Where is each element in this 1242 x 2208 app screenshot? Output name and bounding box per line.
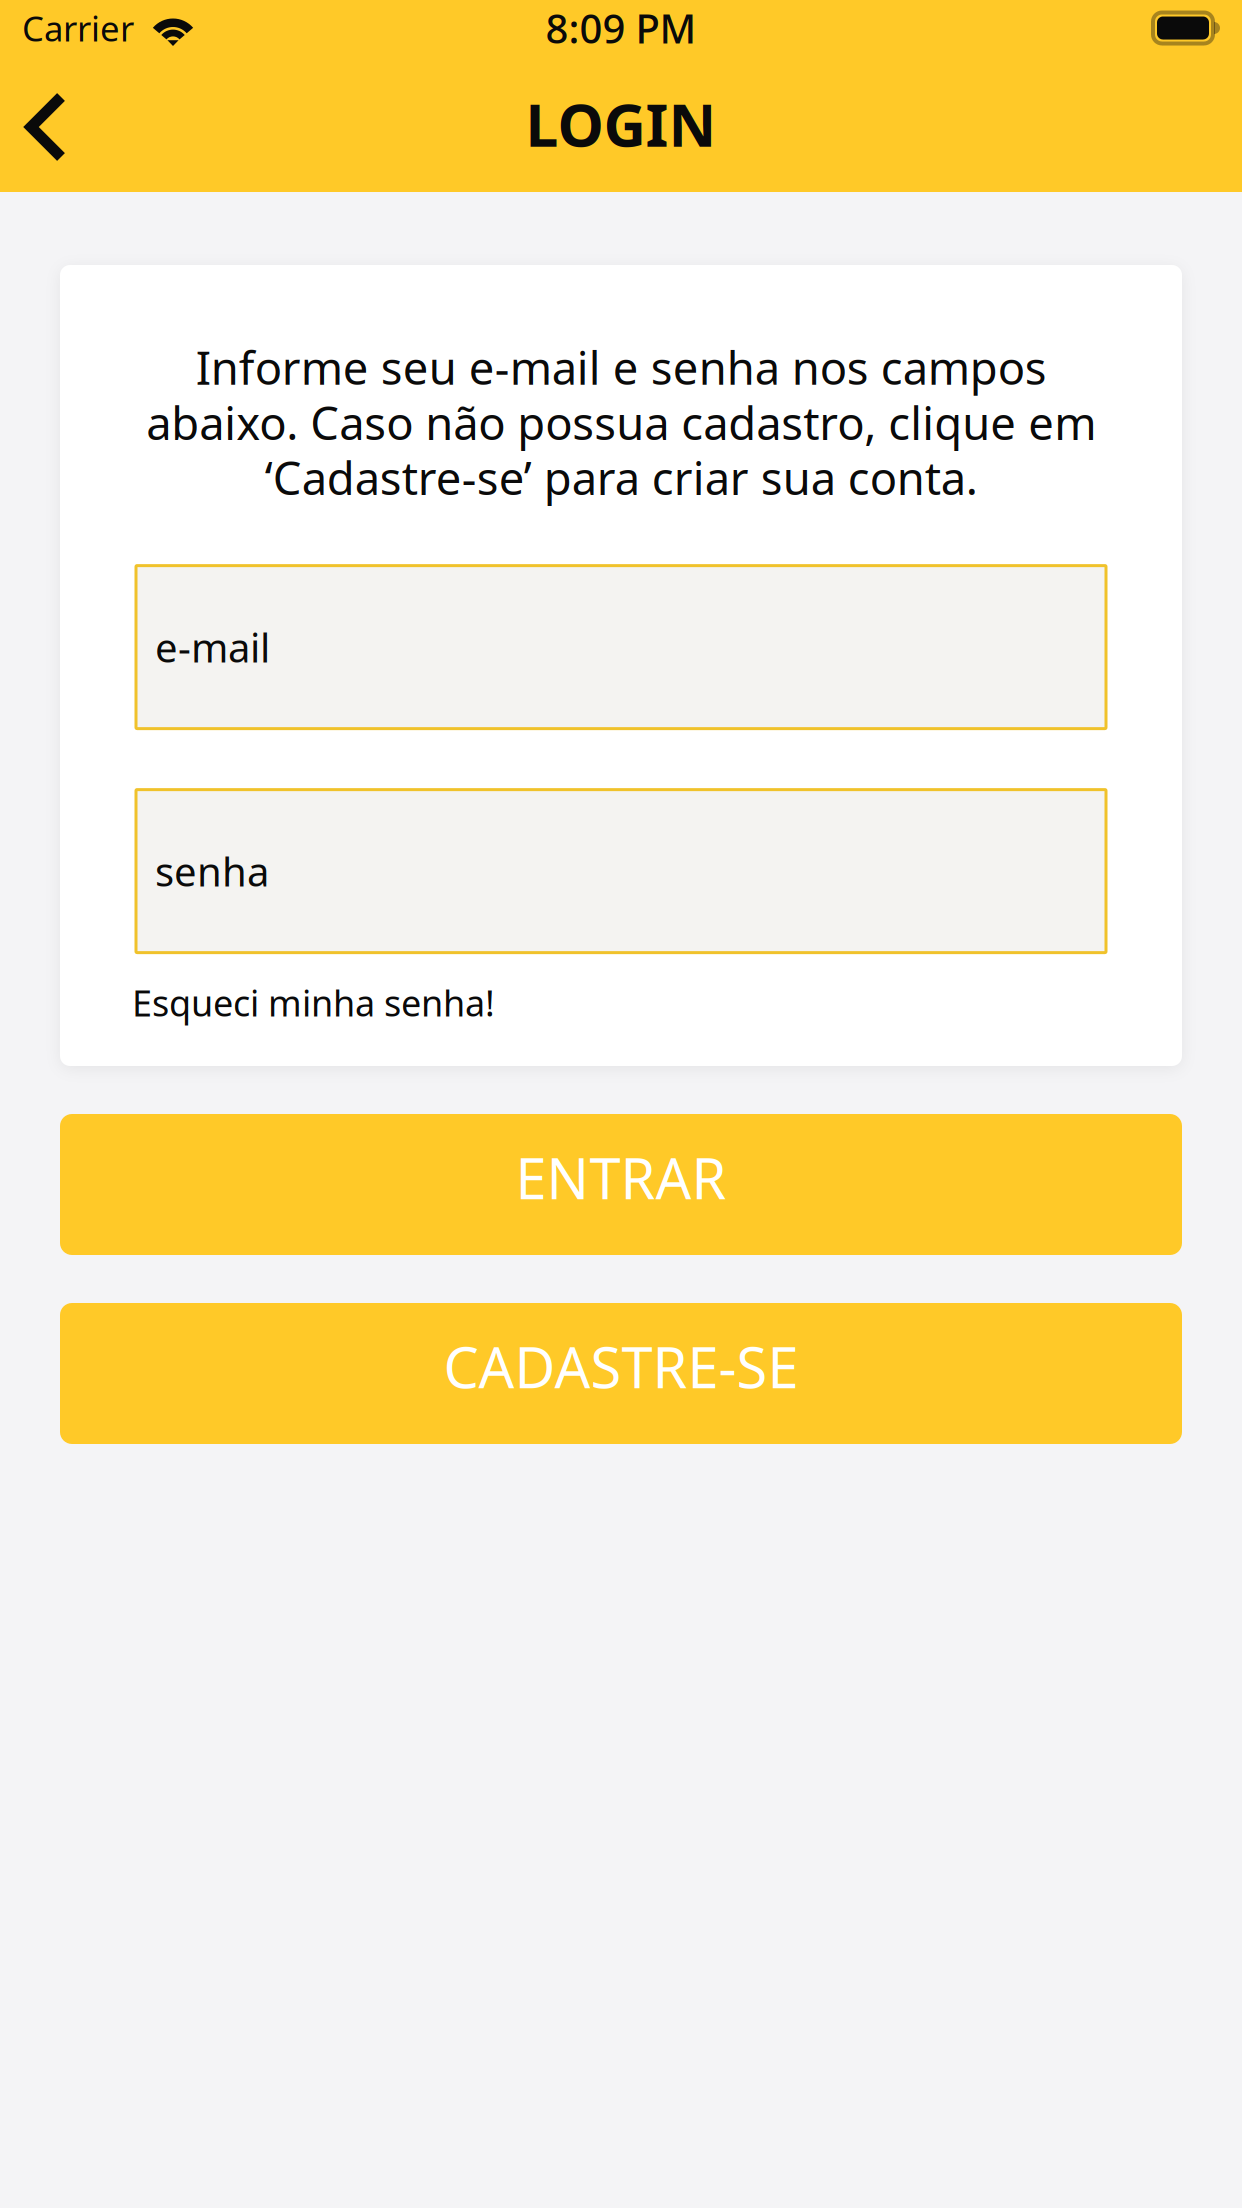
staticText: e-mail (155, 620, 270, 674)
staticText: ENTRAR (515, 1140, 726, 1215)
staticText: Esqueci minha senha! (132, 979, 495, 1026)
button[interactable]: e-mail (136, 566, 1106, 729)
button[interactable]: CADASTRE-SE (60, 1303, 1182, 1444)
staticText: LOGIN (525, 85, 716, 163)
button[interactable]: Back (0, 56, 97, 192)
button[interactable]: ENTRAR (60, 1114, 1182, 1255)
staticText: Carrier (22, 5, 134, 51)
staticText: Informe seu e-mail e senha nos campos ab… (146, 337, 1096, 508)
button[interactable]: Esqueci minha senha! (132, 979, 495, 1026)
staticText: CADASTRE-SE (443, 1329, 798, 1404)
button[interactable]: senha (136, 790, 1106, 953)
staticText: 8:09 PM (545, 1, 696, 54)
staticText: senha (155, 844, 269, 898)
